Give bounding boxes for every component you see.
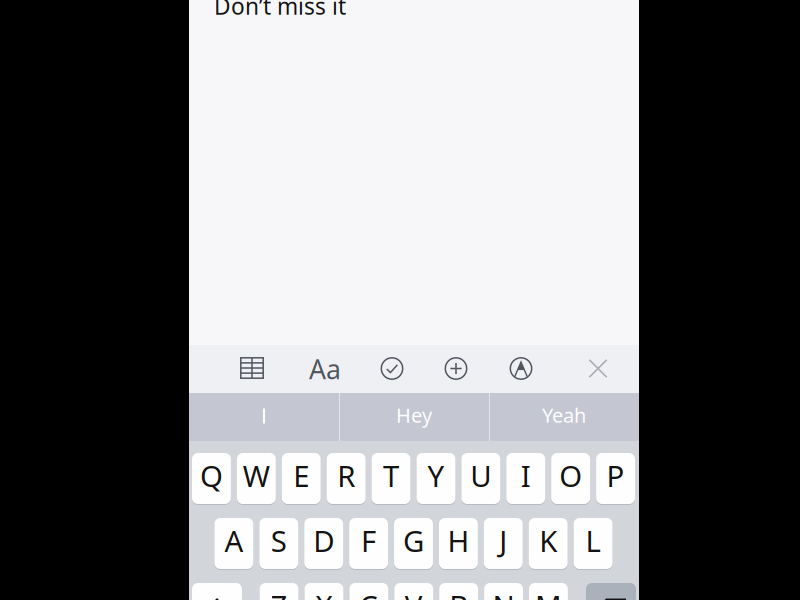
button[interactable]: A xyxy=(214,518,253,569)
button[interactable]: Y xyxy=(416,453,455,504)
staticText: Y xyxy=(427,456,444,495)
button[interactable]: L xyxy=(574,518,612,569)
button[interactable]: W xyxy=(237,453,276,504)
button[interactable]: V xyxy=(394,583,433,600)
button[interactable]: Checklist xyxy=(380,357,403,380)
button[interactable]: R xyxy=(327,453,366,504)
staticText: O xyxy=(559,456,582,495)
staticText: Z xyxy=(271,586,288,600)
staticText: S xyxy=(271,521,287,560)
staticText: Q xyxy=(200,456,223,495)
button[interactable]: Close xyxy=(588,359,607,378)
button[interactable]: G xyxy=(394,518,433,569)
button[interactable]: Table xyxy=(240,357,264,379)
staticText: T xyxy=(383,456,399,495)
staticText: I xyxy=(521,456,531,495)
staticText: Yeah xyxy=(542,402,586,428)
button[interactable]: M xyxy=(529,583,568,600)
button[interactable]: H xyxy=(439,518,478,569)
button[interactable]: F xyxy=(349,518,388,569)
button[interactable]: Q xyxy=(192,453,231,504)
button[interactable]: X xyxy=(304,583,343,600)
button[interactable]: D xyxy=(304,518,343,569)
button[interactable]: I xyxy=(189,392,339,440)
button[interactable]: N xyxy=(484,583,523,600)
staticText: X xyxy=(315,586,332,600)
button[interactable]: Text format xyxy=(305,356,345,382)
staticText: H xyxy=(447,521,469,560)
staticText: M xyxy=(535,586,562,600)
staticText: F xyxy=(361,521,376,560)
button[interactable]: Markup xyxy=(509,357,532,380)
button[interactable]: Z xyxy=(260,583,298,600)
staticText: K xyxy=(539,521,557,560)
button[interactable]: Yeah xyxy=(489,393,639,441)
button[interactable]: U xyxy=(461,453,500,504)
staticText: U xyxy=(470,456,491,495)
staticText: B xyxy=(449,586,468,600)
button[interactable]: Shift xyxy=(192,583,242,600)
button[interactable]: T xyxy=(372,453,410,504)
button[interactable]: S xyxy=(259,518,298,569)
button[interactable]: K xyxy=(529,518,568,569)
staticText: V xyxy=(405,586,423,600)
staticText: E xyxy=(293,456,309,495)
button[interactable]: P xyxy=(596,453,635,504)
staticText: D xyxy=(313,521,334,560)
button[interactable]: C xyxy=(349,583,388,600)
staticText: G xyxy=(403,521,424,560)
button[interactable]: O xyxy=(551,453,590,504)
staticText: P xyxy=(606,456,624,495)
button[interactable]: B xyxy=(439,583,478,600)
staticText: N xyxy=(493,586,515,600)
staticText: Aa xyxy=(309,351,341,387)
button[interactable]: I xyxy=(506,453,545,504)
staticText: Don’t miss it xyxy=(214,0,346,21)
staticText: Hey xyxy=(396,402,432,428)
staticText: J xyxy=(499,521,507,560)
button[interactable]: Add attachment xyxy=(444,357,467,380)
staticText: R xyxy=(337,456,355,495)
staticText: C xyxy=(359,586,378,600)
staticText: L xyxy=(586,521,601,560)
staticText: W xyxy=(243,456,270,495)
button[interactable]: Hey xyxy=(339,393,489,441)
button[interactable]: J xyxy=(484,518,523,569)
staticText: A xyxy=(224,521,243,560)
button[interactable]: Delete xyxy=(586,583,636,600)
button[interactable]: E xyxy=(282,453,321,504)
